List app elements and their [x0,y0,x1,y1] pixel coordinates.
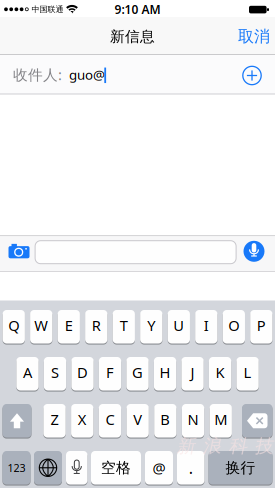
button[interactable]: C [99,404,121,437]
button[interactable]: D [71,357,94,390]
staticText: R [92,315,101,335]
staticText: 新信息 [110,27,155,45]
button[interactable]: G [126,357,149,390]
staticText: F [106,362,114,382]
button[interactable]: Q [3,310,25,343]
staticText: 收件人: [13,65,62,84]
staticText: P [257,315,266,335]
staticText: 换行 [225,459,255,477]
staticText: 取消 [238,27,270,46]
staticText: J [191,362,195,382]
button[interactable]: R [85,310,107,343]
button[interactable]: X [71,404,93,437]
button[interactable]: Next Keyboard [34,451,62,484]
staticText: 浪 [202,434,221,457]
staticText: E [65,315,73,335]
staticText: 技 [254,434,273,457]
button[interactable]: Dictation [66,451,87,484]
staticText: W [34,315,48,335]
button[interactable]: Z [43,404,66,437]
staticText: guo@ [69,66,105,83]
button[interactable]: N [182,404,204,437]
button[interactable]: 取消 [232,21,275,51]
button[interactable]: @ [145,451,173,484]
staticText: Z [50,409,58,429]
button[interactable]: Add Contact [240,63,264,87]
button[interactable]: U [168,310,190,343]
button[interactable]: 空格 [91,451,141,484]
staticText: Q [8,315,19,335]
button[interactable]: Dictate [243,241,264,262]
button[interactable]: J [181,357,204,390]
button[interactable]: O [223,310,245,343]
button[interactable]: B [154,404,176,437]
button[interactable]: M [210,404,232,437]
button[interactable]: K [209,357,231,390]
staticText: B [160,409,170,429]
button[interactable]: 换行 [208,451,272,484]
button[interactable]: I [195,310,217,343]
staticText: I [204,315,209,335]
staticText: S [51,362,59,382]
staticText: K [216,362,225,382]
button[interactable]: F [99,357,121,390]
staticText: @ [152,458,165,477]
staticText: 科 [228,434,247,457]
button[interactable]: Shift [2,404,31,437]
button[interactable]: A [16,357,39,390]
button[interactable]: E [58,310,80,343]
button[interactable]: Camera [5,241,32,262]
button[interactable]: Delete [242,404,272,437]
staticText: H [160,362,171,382]
staticText: T [120,315,128,335]
button[interactable]: V [126,404,149,437]
staticText: 新 [176,434,195,457]
staticText: L [244,362,252,382]
button[interactable]: S [44,357,66,390]
staticText: 123 [7,461,25,475]
staticText: 9:10 AM [114,1,160,17]
button[interactable]: L [236,357,259,390]
staticText: V [133,409,142,429]
staticText: U [173,315,184,335]
staticText: 空格 [101,459,131,477]
staticText: N [188,409,199,429]
button[interactable]: Y [140,310,162,343]
button[interactable]: W [30,310,52,343]
staticText: . [189,457,193,478]
button[interactable]: P [250,310,272,343]
staticText: G [132,362,143,382]
staticText: A [23,362,32,382]
button[interactable]: H [154,357,176,390]
staticText: 中国联通 [31,4,63,14]
button[interactable]: . [177,451,204,484]
staticText: X [78,409,87,429]
staticText: D [77,362,88,382]
staticText: O [228,315,239,335]
button[interactable]: 123 [2,451,30,484]
staticText: M [214,409,227,429]
staticText: C [105,409,114,429]
staticText: Y [147,315,155,335]
button[interactable]: T [113,310,135,343]
